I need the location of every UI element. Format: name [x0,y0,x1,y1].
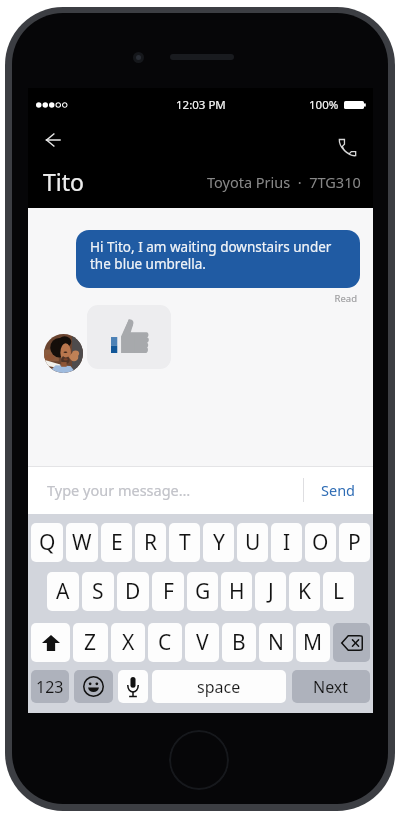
button[interactable]: C [148,623,182,662]
staticText: U [245,528,261,557]
staticText: N [268,628,284,657]
staticText: S [92,577,104,606]
staticText: R [144,528,158,557]
button[interactable]: Back [36,123,70,157]
button[interactable]: O [305,523,336,562]
staticText: 12:03 PM [176,97,226,113]
button[interactable]: D [117,572,149,611]
button[interactable]: S [82,572,114,611]
staticText: B [232,628,246,657]
staticText: V [196,628,209,657]
staticText: Z [84,628,97,657]
button[interactable]: I [271,523,302,562]
staticText: X [122,628,135,657]
button[interactable]: Emoji [74,670,113,703]
button[interactable]: T [169,523,200,562]
button[interactable]: F [152,572,184,611]
button[interactable] [87,305,171,369]
staticText: 100% [309,97,339,113]
staticText: K [298,577,311,606]
button[interactable]: 123 [31,670,69,703]
button[interactable]: L [323,572,354,611]
button[interactable]: M [296,623,330,662]
button[interactable]: Backspace [333,623,370,662]
staticText: Send [321,480,356,500]
button[interactable]: A [47,572,79,611]
staticText: H [229,577,245,606]
button[interactable]: space [152,670,286,703]
button[interactable]: Send [311,470,366,510]
staticText: A [56,577,70,606]
staticText: Type your message… [47,480,191,500]
button[interactable]: Voice input [118,670,148,703]
staticText: O [312,528,329,557]
button[interactable]: J [255,572,286,611]
staticText: Next [313,676,349,698]
button[interactable]: N [259,623,293,662]
staticText: C [158,628,172,657]
button[interactable]: Shift [31,623,70,662]
staticText: W [72,528,92,557]
button[interactable]: Y [203,523,234,562]
button[interactable]: P [339,523,370,562]
button[interactable]: Next [292,670,370,703]
staticText: Y [213,528,225,557]
button[interactable]: B [222,623,256,662]
staticText: F [163,577,174,606]
button[interactable]: Hi Tito, I am waiting downstairs under t… [76,230,360,288]
staticText: Read [28,292,357,305]
staticText: L [333,577,345,606]
staticText: J [268,577,274,606]
staticText: M [303,628,323,657]
button[interactable]: W [66,523,98,562]
staticText: Q [39,528,56,557]
staticText: space [197,676,241,698]
staticText: G [195,577,211,606]
staticText: T [179,528,191,557]
staticText: P [348,528,361,557]
staticText: Hi Tito, I am waiting downstairs under t… [90,238,346,273]
button[interactable]: Z [73,623,108,662]
staticText: E [111,528,123,557]
button[interactable]: G [187,572,218,611]
button[interactable]: U [237,523,268,562]
staticText: Toyota Prius · 7TG310 [207,172,361,192]
staticText: Tito [43,166,84,197]
button[interactable]: V [185,623,219,662]
button[interactable]: Q [31,523,63,562]
staticText: D [125,577,141,606]
staticText: I [283,528,291,557]
button[interactable]: E [101,523,132,562]
button[interactable]: R [135,523,166,562]
button[interactable]: K [289,572,320,611]
button[interactable]: Call [338,138,357,157]
button[interactable]: X [111,623,145,662]
button[interactable]: H [221,572,252,611]
staticText: 123 [36,676,64,698]
